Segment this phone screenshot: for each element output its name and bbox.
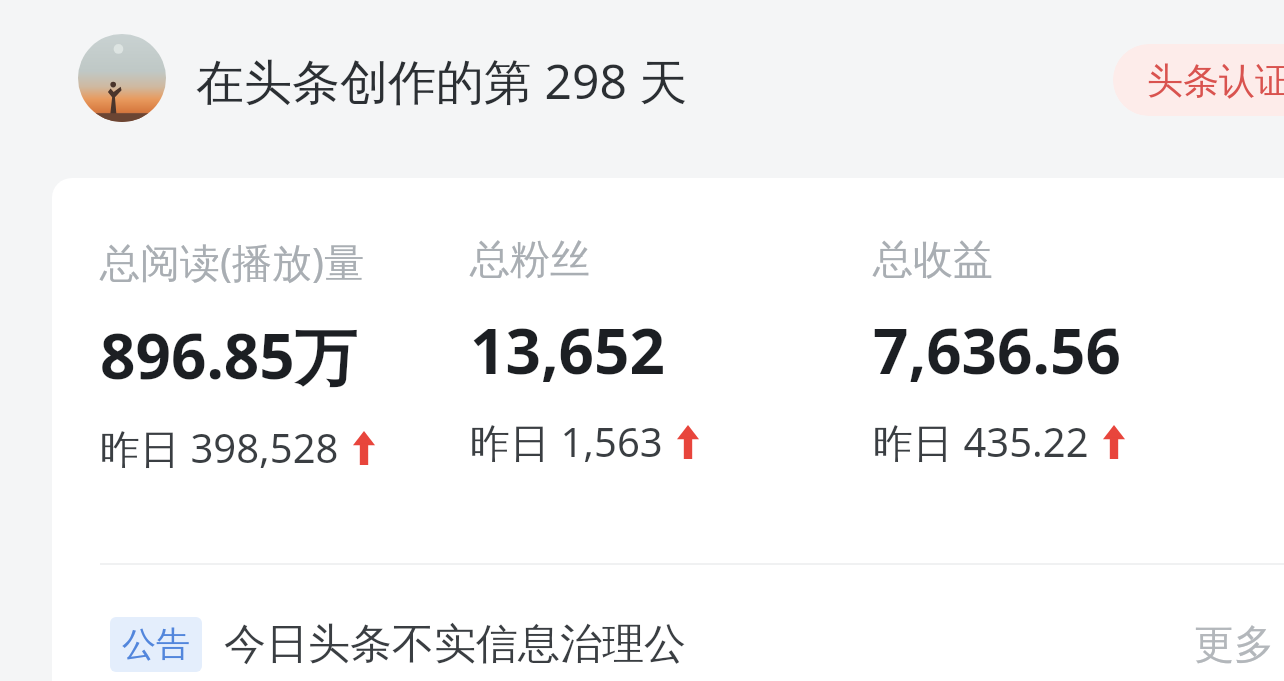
staticText: 总阅读(播放)量 [100,234,364,289]
staticText: 今日头条不实信息治理公告（2025年... [224,618,709,671]
staticText: 总收益 [873,234,993,284]
button[interactable]: 总阅读(播放)量 [52,234,462,475]
staticText: 13,652 [470,308,665,392]
staticText: 昨日 1,563 [470,414,663,469]
staticText: 7,636.56 [873,308,1121,392]
button[interactable]: 头条认证 [1113,44,1284,116]
button[interactable]: 总收益 [873,234,1284,469]
staticText: 在头条创作的第 298 天 [196,48,688,114]
staticText: 896.85万 [100,313,357,398]
button[interactable]: 总粉丝 [462,234,873,469]
staticText: 昨日 435.22 [873,414,1089,469]
button[interactable]: 公告 [52,602,1284,681]
staticText: 总粉丝 [470,234,590,284]
staticText: 更多 [1194,619,1274,669]
staticText: 公告 [122,623,190,666]
button[interactable]: Profile avatar [78,34,166,122]
staticText: 头条认证 [1147,58,1284,103]
staticText: 昨日 398,528 [100,420,339,475]
